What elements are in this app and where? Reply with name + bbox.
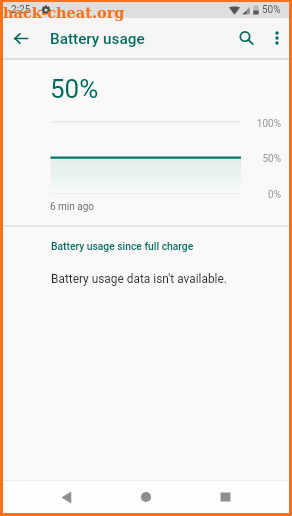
button[interactable]: Navigate up xyxy=(6,23,36,53)
staticText: Battery usage since full charge xyxy=(51,240,194,252)
button[interactable]: Search xyxy=(231,23,261,53)
staticText: 50% xyxy=(50,74,99,104)
button[interactable]: Recent apps xyxy=(209,481,241,513)
button[interactable]: Back xyxy=(50,481,82,513)
staticText: Battery usage xyxy=(50,30,145,48)
staticText: 50% xyxy=(201,153,281,165)
staticText: Battery usage data isn't available. xyxy=(51,272,227,286)
button[interactable]: More options xyxy=(262,23,292,53)
button[interactable]: Home xyxy=(130,481,162,513)
staticText: 50% xyxy=(262,4,281,16)
staticText: 2:25 xyxy=(11,4,31,16)
staticText: 100% xyxy=(201,118,281,130)
staticText: 0% xyxy=(201,189,281,201)
staticText: 6 min ago xyxy=(50,201,95,213)
staticText: hack-cheat.org xyxy=(3,4,125,21)
